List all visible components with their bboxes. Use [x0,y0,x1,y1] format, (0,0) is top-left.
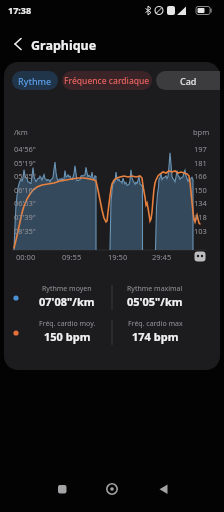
button[interactable] [100,480,124,498]
staticText: 181 [194,158,207,168]
staticText: Fréq. cardio max [128,319,183,329]
button[interactable] [6,34,26,54]
button[interactable] [152,480,176,498]
staticText: 05'05"/km [127,294,183,309]
staticText: /km [14,127,28,137]
button[interactable]: Rythme [12,71,58,90]
staticText: Rythme maximal [127,284,183,294]
staticText: 06'16" [14,185,36,195]
staticText: Rythme moyen [42,284,92,294]
staticText: 00:00 [16,252,36,262]
staticText: 174 bpm [132,329,179,344]
staticText: 166 [194,171,207,181]
staticText: 150 [194,185,207,195]
staticText: bpm [193,127,210,137]
staticText: 07'08"/km [39,294,95,309]
staticText: Graphique [31,37,97,54]
staticText: 04'56" [14,144,36,154]
button[interactable]: Rythme maximal [110,284,200,312]
staticText: 07'39" [14,212,36,222]
button[interactable]: Cad [156,71,220,90]
staticText: 103 [194,226,207,236]
staticText: 29:45 [152,252,172,262]
button[interactable]: Rythme moyen [24,284,110,312]
staticText: 150 bpm [44,329,91,344]
staticText: 05'45" [14,171,36,181]
staticText: 17:38 [8,4,32,16]
staticText: 134 [194,198,207,208]
staticText: 05'19" [14,158,36,168]
staticText: 06'53" [14,198,36,208]
staticText: Rythme [18,75,52,87]
staticText: Fréquence cardiaque [64,75,150,87]
button[interactable]: Fréquence cardiaque [62,71,152,90]
button[interactable]: Fréq. cardio max [110,319,200,347]
button[interactable]: Fréq. cardio moy. [24,319,110,347]
staticText: 118 [194,212,207,222]
staticText: 19:50 [108,252,128,262]
button[interactable] [50,480,74,498]
staticText: Cad [180,75,197,87]
staticText: 08'35" [14,226,36,236]
staticText: 197 [194,144,207,154]
staticText: 09:55 [62,252,82,262]
staticText: Fréq. cardio moy. [39,319,96,329]
